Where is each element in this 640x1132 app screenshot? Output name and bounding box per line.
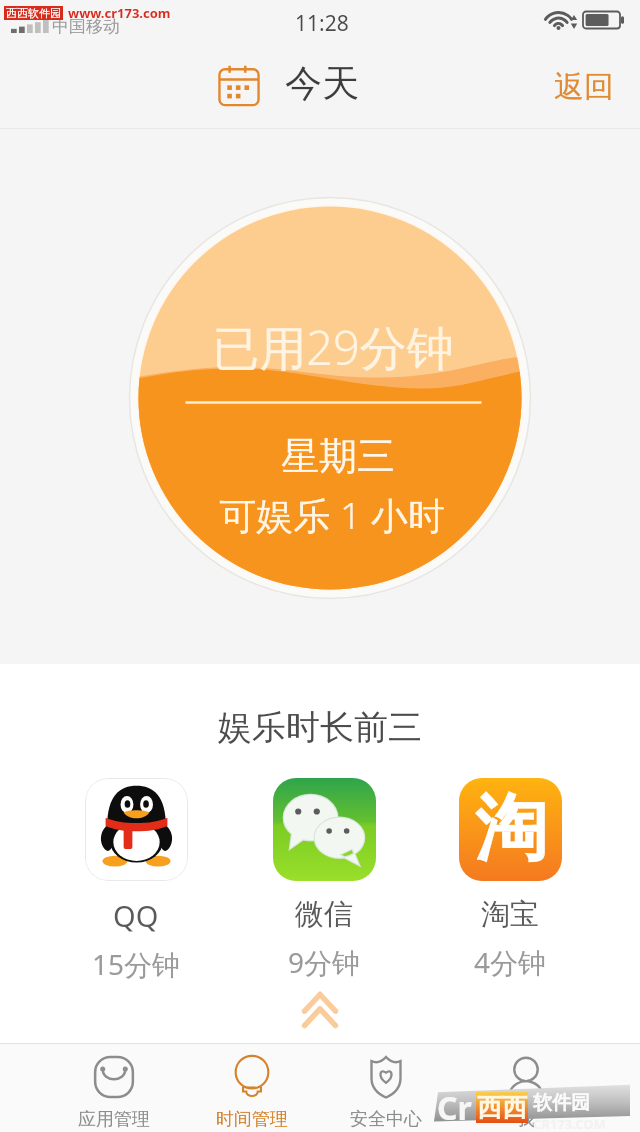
staticText: 可娱乐 1 小时 xyxy=(130,489,534,540)
staticText: 11:28 xyxy=(295,9,349,38)
staticText: 4分钟 xyxy=(474,943,547,981)
staticText: 西西软件园 xyxy=(6,6,61,20)
staticText: 淘 xyxy=(475,784,547,875)
button[interactable]: 安全中心 xyxy=(316,1044,456,1132)
staticText: 安全中心 xyxy=(350,1108,422,1131)
staticText: 西西 xyxy=(477,1092,527,1123)
button[interactable]: Calendar xyxy=(216,62,359,109)
staticText: 中国移动 xyxy=(52,16,120,37)
button[interactable]: Time management xyxy=(182,1044,322,1132)
button[interactable]: 我 xyxy=(456,1044,596,1132)
staticText: 应用管理 xyxy=(78,1108,150,1131)
button[interactable]: QQ xyxy=(76,778,196,983)
staticText: 今天 xyxy=(285,60,359,107)
staticText: 15分钟 xyxy=(92,945,181,983)
staticText: Cr xyxy=(437,1086,472,1130)
staticText: 软件园 xyxy=(533,1091,590,1115)
staticText: 我 xyxy=(517,1108,535,1131)
other: App management xyxy=(91,1054,137,1100)
staticText: 9分钟 xyxy=(288,943,361,981)
staticText: CR173.COM xyxy=(533,1115,606,1132)
button[interactable]: 返回 xyxy=(538,40,640,129)
button[interactable]: 淘 xyxy=(450,778,570,981)
staticText: 已用29分钟 xyxy=(131,315,535,379)
other: Calendar xyxy=(216,63,262,109)
staticText: 星期三 xyxy=(136,432,540,480)
staticText: 微信 xyxy=(295,896,353,933)
staticText: 娱乐时长前三 xyxy=(0,706,640,749)
staticText: 淘宝 xyxy=(481,896,539,933)
staticText: 时间管理 xyxy=(216,1108,288,1131)
other: Time management xyxy=(229,1054,275,1100)
staticText: 返回 xyxy=(554,68,614,106)
staticText: QQ xyxy=(113,896,159,935)
staticText: www.cr173.com xyxy=(68,4,171,22)
button[interactable]: App management xyxy=(44,1044,184,1132)
button[interactable]: 微信 xyxy=(264,778,384,981)
button[interactable]: Expand xyxy=(303,993,337,1025)
